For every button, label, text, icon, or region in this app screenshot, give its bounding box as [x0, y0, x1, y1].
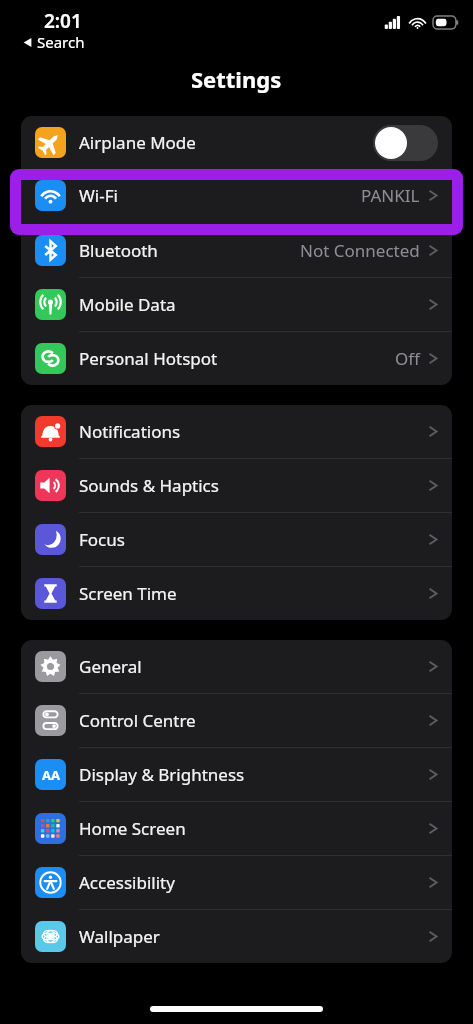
staticText: 2:01 — [44, 8, 82, 34]
button[interactable]: Sounds & Haptics — [21, 459, 452, 512]
button[interactable]: Home Screen — [21, 802, 452, 855]
staticText: Focus — [79, 528, 428, 551]
staticText: Settings — [191, 64, 282, 94]
button[interactable]: Bluetooth — [21, 224, 452, 277]
staticText: Home Screen — [79, 817, 428, 840]
staticText: Accessibility — [79, 871, 428, 894]
staticText: Search — [37, 32, 85, 52]
staticText: Personal Hotspot — [79, 347, 395, 370]
staticText: Wi-Fi — [79, 184, 361, 207]
button[interactable]: Wi-Fi — [21, 169, 452, 222]
staticText: General — [79, 655, 428, 678]
staticText: PANKIL — [361, 184, 420, 207]
staticText: Bluetooth — [79, 239, 300, 262]
button[interactable]: Accessibility — [21, 856, 452, 909]
button[interactable]: Control Centre — [21, 694, 452, 747]
button[interactable]: Airplane Mode — [21, 116, 452, 169]
button[interactable]: Wallpaper — [21, 910, 452, 963]
staticText: Display & Brightness — [79, 763, 428, 786]
button[interactable]: Mobile Data — [21, 278, 452, 331]
staticText: Notifications — [79, 420, 428, 443]
button[interactable]: General — [21, 640, 452, 693]
button[interactable]: Screen Time — [21, 567, 452, 620]
staticText: Off — [395, 347, 420, 370]
staticText: Wi-Fi — [79, 185, 361, 208]
button[interactable]: AA — [21, 748, 452, 801]
staticText: Wallpaper — [79, 925, 428, 948]
staticText: Airplane Mode — [79, 131, 373, 154]
staticText: Mobile Data — [79, 293, 428, 316]
button[interactable]: Airplane Mode toggle — [373, 125, 438, 161]
button[interactable]: Notifications — [21, 405, 452, 458]
staticText: Sounds & Haptics — [79, 474, 428, 497]
staticText: PANKIL — [361, 185, 420, 208]
button[interactable]: Personal Hotspot — [21, 332, 452, 385]
staticText: AA — [42, 766, 60, 784]
button[interactable]: Wi-Fi — [21, 170, 452, 223]
button[interactable]: Focus — [21, 513, 452, 566]
staticText: Not Connected — [300, 239, 420, 262]
staticText: Screen Time — [79, 582, 428, 605]
staticText: Control Centre — [79, 709, 428, 732]
